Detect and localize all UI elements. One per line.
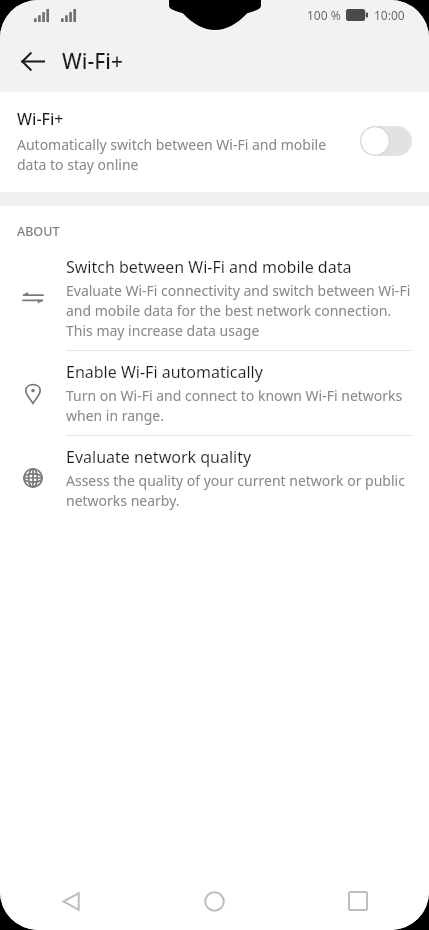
button[interactable]: Recents [286, 872, 429, 930]
button[interactable]: Home [143, 872, 286, 930]
staticText: Turn on Wi-Fi and connect to known Wi-Fi… [66, 386, 412, 425]
button[interactable]: Switch between Wi-Fi and mobile data [0, 246, 429, 351]
staticText: 10:00 [374, 7, 405, 23]
button[interactable]: Evaluate network quality [0, 436, 429, 520]
staticText: Automatically switch between Wi-Fi and m… [17, 135, 346, 174]
button[interactable]: Wi-Fi+ toggle [360, 126, 412, 156]
button[interactable]: Back [8, 37, 56, 85]
staticText: Wi-Fi+ [62, 47, 123, 76]
staticText: Evaluate Wi-Fi connectivity and switch b… [66, 281, 412, 340]
button[interactable]: Back [0, 872, 143, 930]
staticText: Wi-Fi+ [17, 108, 64, 130]
staticText: Assess the quality of your current netwo… [66, 471, 412, 510]
staticText: Switch between Wi-Fi and mobile data [66, 256, 352, 278]
staticText: ABOUT [17, 223, 60, 240]
button[interactable]: Enable Wi-Fi automatically [0, 351, 429, 436]
staticText: Enable Wi-Fi automatically [66, 361, 263, 383]
staticText: Evaluate network quality [66, 446, 252, 468]
staticText: 100 % [307, 7, 341, 23]
button[interactable]: Wi-Fi+ [0, 92, 429, 192]
